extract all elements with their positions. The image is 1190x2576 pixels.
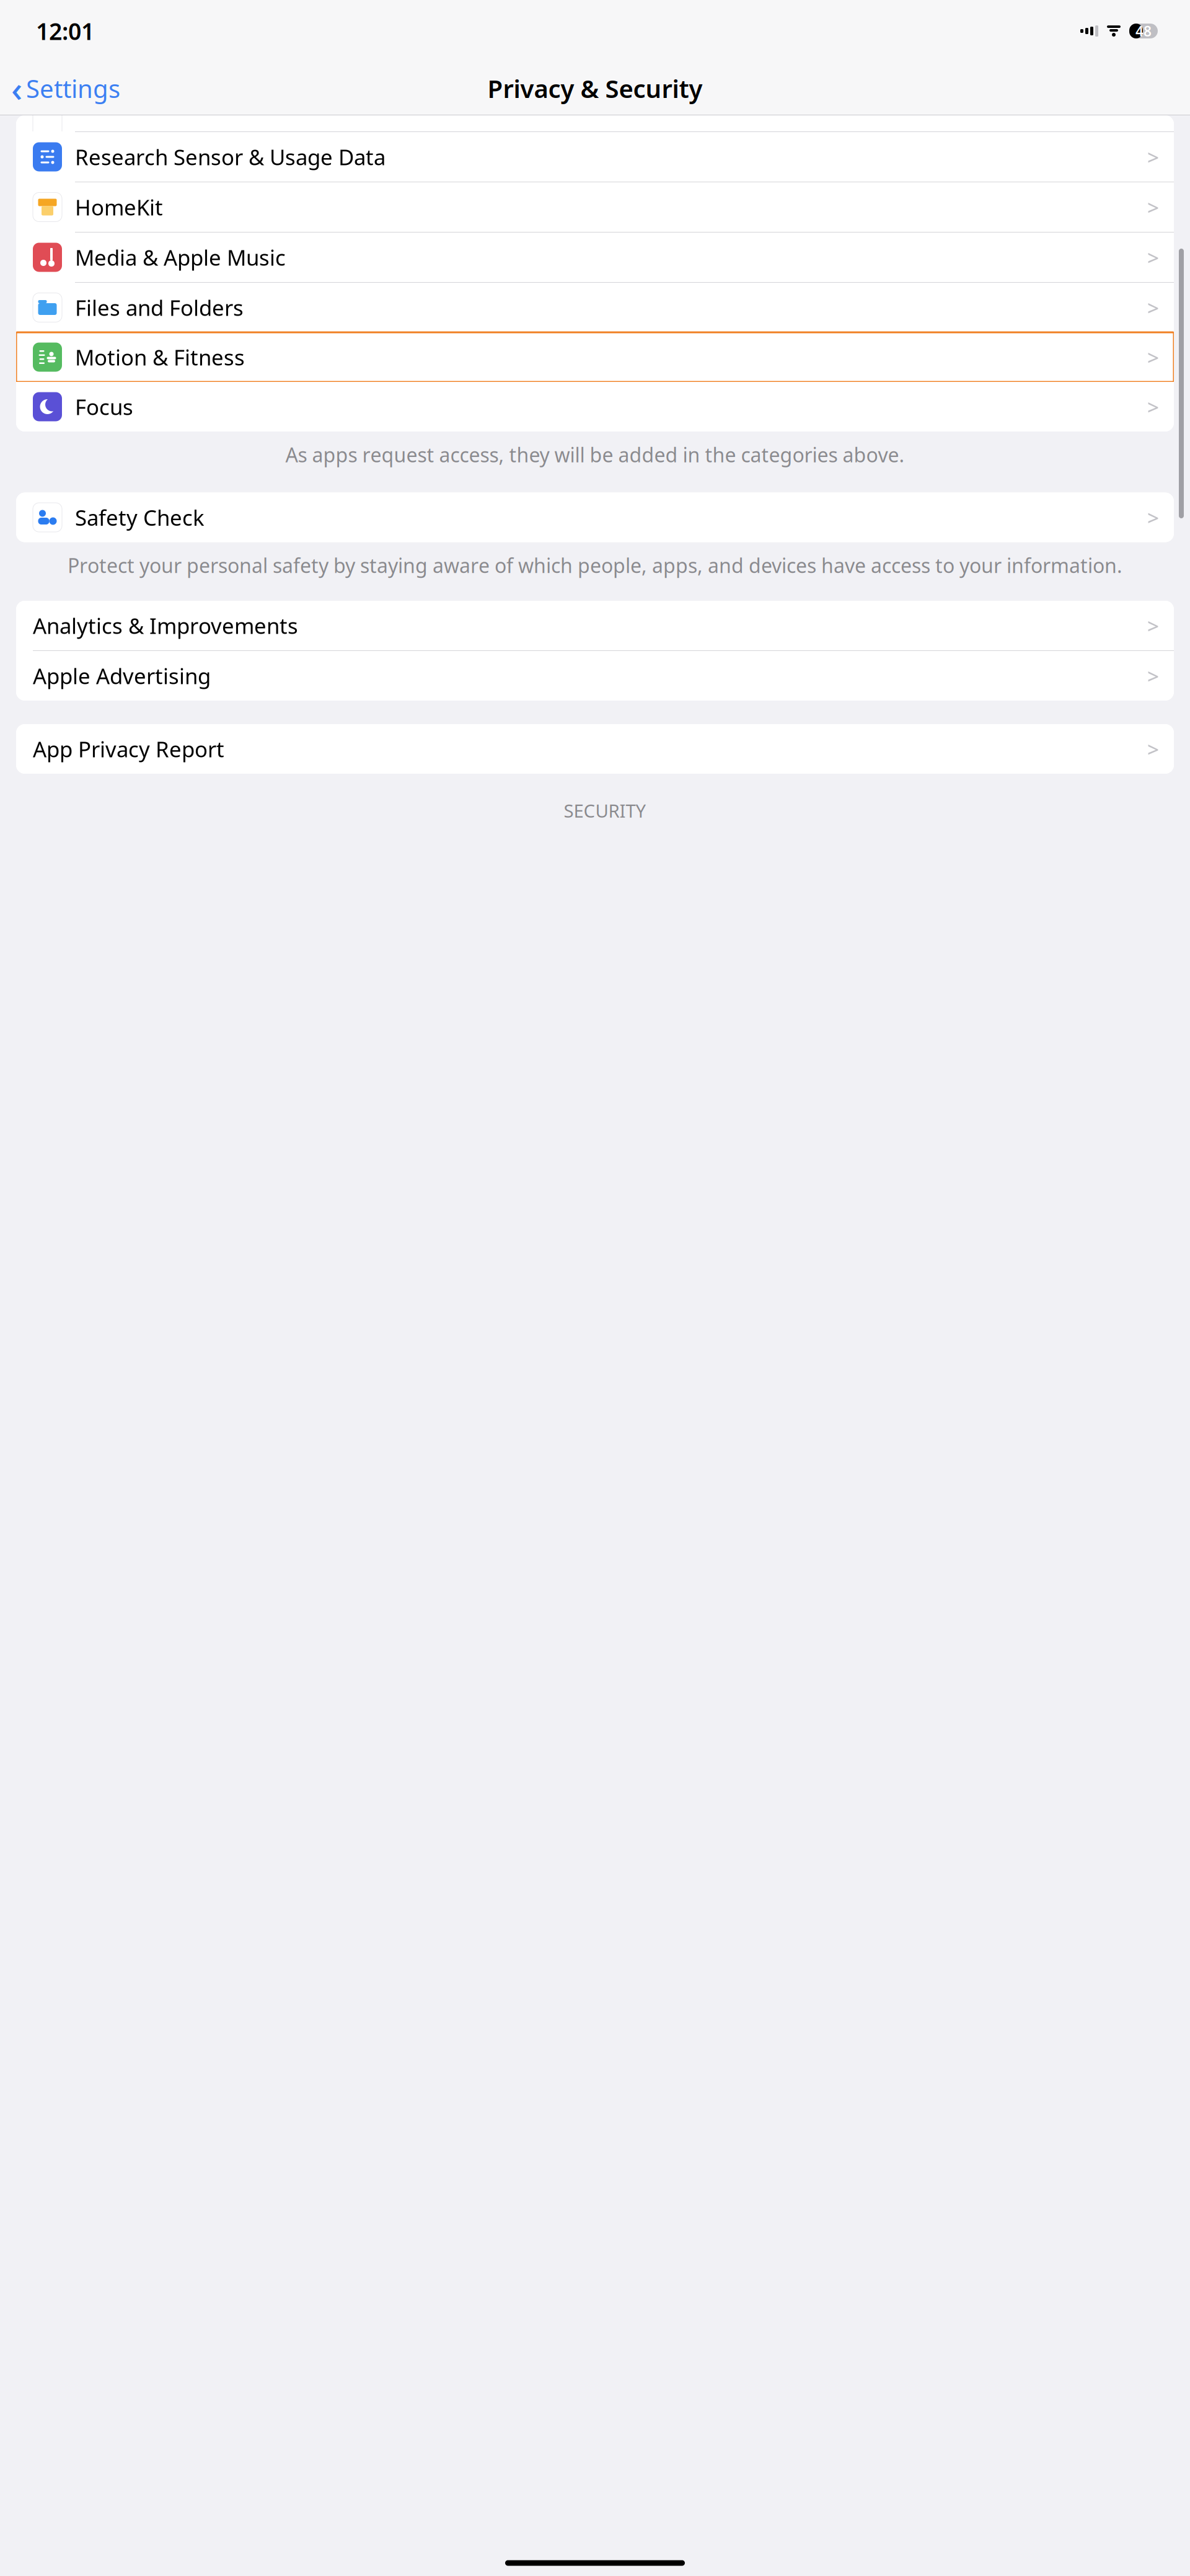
staticText: > [1147,193,1159,221]
staticText: Focus [75,392,133,421]
button[interactable]: ‹ [0,62,120,115]
staticText: 12:01 [36,16,94,46]
staticText: 48 [1135,22,1152,40]
button[interactable]: Apple Advertising [16,651,1174,701]
staticText: As apps request access, they will be add… [285,441,905,468]
staticText: > [1147,612,1159,639]
staticText: > [1147,343,1159,371]
staticText: Protect your personal safety by staying … [68,552,1122,578]
staticText: SECURITY [564,799,646,823]
staticText: App Privacy Report [33,735,224,763]
button[interactable]: HomeKit [16,182,1174,232]
staticText: Apple Advertising [33,662,211,690]
button[interactable]: Safety Check [16,493,1174,542]
button[interactable]: Motion & Fitness [16,332,1174,382]
button[interactable]: Files and Folders [16,283,1174,332]
staticText: > [1147,735,1159,763]
staticText: Media & Apple Music [75,243,286,272]
staticText: > [1147,294,1159,321]
staticText: Motion & Fitness [75,343,245,371]
staticText: Safety Check [75,503,205,532]
staticText: Settings [26,72,120,105]
staticText: HomeKit [75,193,163,221]
button[interactable]: App Privacy Report [16,724,1174,774]
staticText: > [1147,504,1159,531]
staticText: Research Sensor & Usage Data [75,143,386,171]
staticText: > [1147,143,1159,171]
button[interactable]: Media & Apple Music [16,232,1174,282]
staticText: ‹ [11,65,22,111]
button[interactable]: Analytics & Improvements [16,601,1174,650]
staticText: > [1147,244,1159,271]
button[interactable]: Focus [16,382,1174,432]
staticText: Files and Folders [75,293,244,322]
staticText: > [1147,662,1159,690]
staticText: > [1147,393,1159,420]
staticText: Analytics & Improvements [33,611,298,640]
button[interactable]: Research Sensor & Usage Data [16,132,1174,182]
staticText: Privacy & Security [487,72,703,105]
